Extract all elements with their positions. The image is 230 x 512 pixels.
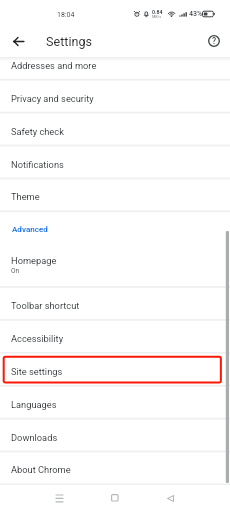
staticText: Languages bbox=[11, 399, 57, 410]
staticText: 18:04 bbox=[57, 11, 75, 19]
staticText: On bbox=[11, 267, 20, 275]
button[interactable]: Notifications bbox=[0, 146, 230, 179]
staticText: Homepage bbox=[11, 255, 57, 266]
button[interactable]: Site settings bbox=[0, 353, 230, 386]
staticText: Safety check bbox=[11, 126, 64, 137]
staticText: ? bbox=[212, 36, 217, 46]
staticText: Settings bbox=[46, 34, 92, 49]
button[interactable]: Help and feedback bbox=[201, 28, 227, 54]
button[interactable]: Addresses and more bbox=[0, 57, 230, 80]
staticText: 43% bbox=[189, 10, 203, 18]
button[interactable]: Downloads bbox=[0, 419, 230, 452]
staticText: 0.84 bbox=[152, 9, 163, 15]
button[interactable]: Advanced bbox=[0, 211, 230, 244]
button[interactable]: Back bbox=[157, 485, 183, 511]
staticText: Site settings bbox=[11, 366, 63, 377]
button[interactable]: Languages bbox=[0, 386, 230, 419]
staticText: Notifications bbox=[11, 159, 64, 170]
staticText: About Chrome bbox=[11, 464, 71, 475]
button[interactable]: Navigate up bbox=[7, 30, 30, 53]
button[interactable]: Homepage bbox=[0, 244, 230, 287]
button[interactable]: Accessibility bbox=[0, 320, 230, 353]
staticText: Toolbar shortcut bbox=[11, 300, 80, 311]
button[interactable]: Theme bbox=[0, 178, 230, 211]
button[interactable]: About Chrome bbox=[0, 451, 230, 484]
staticText: Addresses and more bbox=[11, 60, 97, 71]
button[interactable]: Safety check bbox=[0, 113, 230, 146]
staticText: MB/s bbox=[152, 14, 162, 18]
staticText: Advanced bbox=[12, 224, 48, 233]
button[interactable]: Recent apps bbox=[46, 485, 72, 511]
staticText: Theme bbox=[11, 191, 40, 202]
button[interactable]: Toolbar shortcut bbox=[0, 287, 230, 320]
staticText: Accessibility bbox=[11, 333, 64, 344]
staticText: Privacy and security bbox=[11, 93, 94, 104]
staticText: Downloads bbox=[11, 432, 58, 443]
button[interactable]: Home bbox=[102, 485, 128, 511]
button[interactable]: Privacy and security bbox=[0, 80, 230, 113]
